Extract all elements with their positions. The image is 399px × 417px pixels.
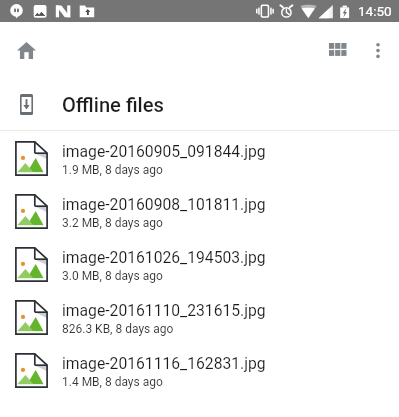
button[interactable]: image-20161026_194503.jpg: [0, 237, 399, 290]
button[interactable]: More options: [360, 31, 396, 67]
button[interactable]: Offline files: [0, 75, 399, 130]
staticText: 3.0 MB, 8 days ago: [62, 269, 163, 283]
button[interactable]: image-20160908_101811.jpg: [0, 184, 399, 237]
staticText: image-20161110_231615.jpg: [62, 301, 266, 319]
staticText: Offline files: [62, 93, 164, 117]
staticText: image-20161026_194503.jpg: [62, 248, 266, 266]
staticText: image-20160908_101811.jpg: [62, 195, 266, 213]
staticText: 826.3 KB, 8 days ago: [62, 322, 174, 336]
button[interactable]: Home: [8, 31, 44, 67]
button[interactable]: Grid view: [319, 31, 355, 67]
staticText: 1.9 MB, 8 days ago: [62, 163, 163, 177]
staticText: image-20161116_162831.jpg: [62, 354, 266, 372]
staticText: 3.2 MB, 8 days ago: [62, 216, 163, 230]
button[interactable]: image-20161116_162831.jpg: [0, 343, 399, 396]
staticText: 14:50: [358, 3, 392, 19]
button[interactable]: image-20160905_091844.jpg: [0, 131, 399, 184]
staticText: 1.4 MB, 8 days ago: [62, 375, 163, 389]
button[interactable]: image-20161110_231615.jpg: [0, 290, 399, 343]
staticText: image-20160905_091844.jpg: [62, 142, 266, 160]
